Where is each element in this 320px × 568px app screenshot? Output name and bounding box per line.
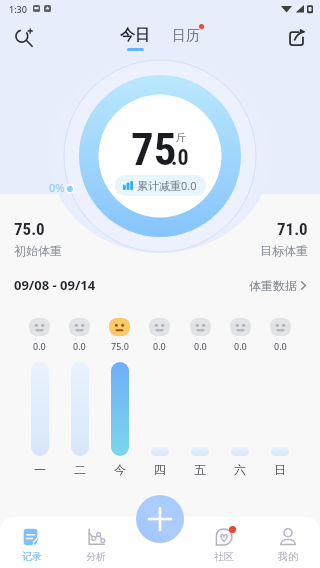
staticText: 记录 bbox=[22, 550, 42, 563]
staticText: 二 bbox=[74, 462, 86, 477]
staticText: 斤 bbox=[176, 131, 186, 144]
staticText: 今 bbox=[114, 462, 126, 477]
staticText: 目标体重 bbox=[260, 243, 308, 258]
button[interactable]: 0.0 bbox=[270, 318, 291, 352]
staticText: 初始体重 bbox=[14, 243, 62, 258]
button[interactable]: 日 bbox=[271, 362, 289, 480]
staticText: 71.0 bbox=[277, 219, 308, 239]
staticText: 0.0 bbox=[73, 340, 86, 352]
staticText: 一 bbox=[34, 462, 46, 477]
staticText: 0.0 bbox=[153, 340, 166, 352]
button[interactable]: 二 bbox=[71, 362, 89, 480]
button[interactable]: 今日 bbox=[116, 26, 154, 51]
button[interactable]: Add record bbox=[136, 495, 184, 543]
staticText: 75 bbox=[131, 123, 177, 176]
staticText: 今日 bbox=[120, 26, 150, 45]
button[interactable]: 0.0 bbox=[69, 318, 90, 352]
button[interactable]: 0.0 bbox=[190, 318, 211, 352]
button[interactable]: 一 bbox=[31, 362, 49, 480]
staticText: 0.0 bbox=[194, 340, 207, 352]
staticText: 1:30 bbox=[9, 3, 27, 15]
staticText: 75.0 bbox=[14, 219, 45, 239]
staticText: 五 bbox=[194, 462, 206, 477]
staticText: 09/08 - 09/14 bbox=[14, 276, 96, 294]
button[interactable]: 0.0 bbox=[230, 318, 251, 352]
staticText: 六 bbox=[234, 462, 246, 477]
staticText: 社区 bbox=[214, 550, 234, 563]
staticText: 累计减重0.0 bbox=[137, 178, 197, 193]
staticText: 分析 bbox=[86, 550, 106, 563]
staticText: .0 bbox=[171, 145, 189, 171]
button[interactable]: Search bbox=[8, 21, 40, 53]
staticText: 75.0 bbox=[111, 340, 129, 352]
button[interactable]: 75.0 bbox=[109, 318, 130, 352]
staticText: 0% bbox=[49, 180, 65, 195]
staticText: 我的 bbox=[278, 550, 298, 563]
button[interactable]: 我的 bbox=[256, 526, 320, 568]
button[interactable]: 分析 bbox=[64, 526, 128, 568]
staticText: 0.0 bbox=[33, 340, 46, 352]
button[interactable]: 记录 bbox=[0, 526, 64, 568]
button[interactable]: 六 bbox=[231, 362, 249, 480]
button[interactable]: 日历 bbox=[168, 26, 204, 46]
staticText: 体重数据 bbox=[249, 278, 297, 293]
staticText: 日历 bbox=[172, 27, 200, 45]
button[interactable]: 四 bbox=[151, 362, 169, 480]
button[interactable]: 0.0 bbox=[29, 318, 50, 352]
button[interactable]: 体重数据 bbox=[245, 274, 310, 297]
staticText: 0.0 bbox=[274, 340, 287, 352]
button[interactable]: 五 bbox=[191, 362, 209, 480]
button[interactable]: 今 bbox=[111, 362, 129, 480]
button[interactable]: 社区 bbox=[192, 526, 256, 568]
staticText: 日 bbox=[274, 462, 286, 477]
button[interactable]: Share bbox=[280, 21, 312, 53]
staticText: 0.0 bbox=[234, 340, 247, 352]
button[interactable]: 累计减重0.0 bbox=[115, 175, 206, 196]
staticText: 四 bbox=[154, 462, 166, 477]
button[interactable]: 0.0 bbox=[149, 318, 170, 352]
